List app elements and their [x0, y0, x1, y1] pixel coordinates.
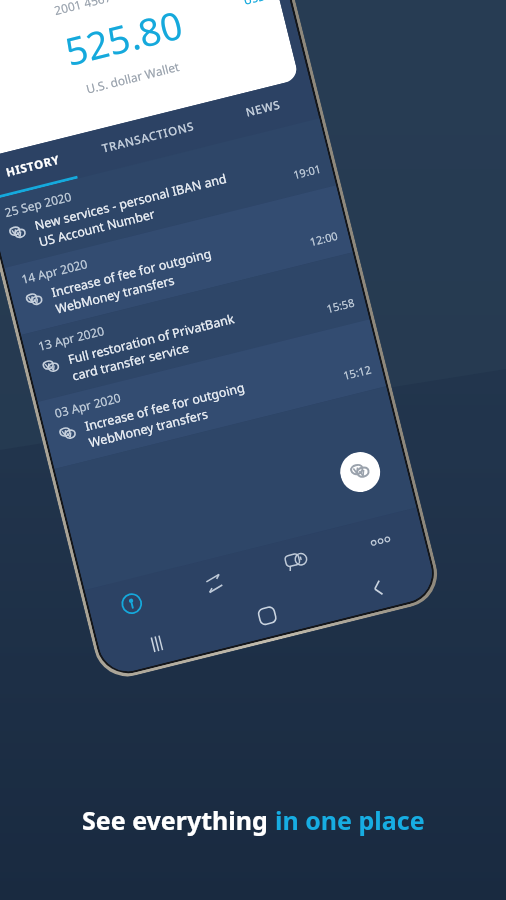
button[interactable]: Home	[207, 582, 328, 650]
button[interactable]: 13 Apr 2020	[21, 252, 369, 402]
staticText: USD	[242, 0, 268, 8]
staticText: 14 Apr 2020	[20, 255, 89, 287]
button[interactable]: Transfer	[167, 549, 261, 616]
staticText: U.S. dollar Wallet	[84, 58, 181, 97]
staticText: 13 Apr 2020	[36, 322, 106, 354]
button[interactable]: 03 Apr 2020	[38, 319, 386, 469]
button[interactable]: Recents	[96, 609, 217, 677]
staticText: Full restoration of PrivatBank card tran…	[66, 289, 326, 384]
staticText: NEWS	[244, 96, 283, 121]
staticText: See everything	[82, 803, 275, 837]
button[interactable]: More	[333, 507, 428, 575]
button[interactable]: HISTORY	[0, 134, 89, 198]
button[interactable]: Back	[317, 554, 438, 622]
staticText: Increase of fee for outgoing WebMoney tr…	[50, 222, 309, 317]
button[interactable]: 2001 4567 6790 8903	[0, 0, 299, 157]
button[interactable]: TRANSACTIONS	[79, 102, 217, 173]
button[interactable]: 14 Apr 2020	[4, 185, 353, 335]
staticText: 19:01	[291, 161, 323, 182]
staticText: Increase of fee for outgoing WebMoney tr…	[83, 356, 342, 450]
staticText: HISTORY	[4, 152, 62, 180]
staticText: 15:58	[325, 294, 357, 316]
staticText: New services - personal IBAN and US Acco…	[33, 155, 292, 250]
staticText: 12:00	[308, 227, 340, 249]
button[interactable]: NEWS	[207, 77, 319, 141]
button[interactable]: 25 Sep 2020	[0, 118, 336, 268]
button[interactable]: New payment	[336, 448, 384, 496]
staticText: 525.80	[59, 0, 187, 77]
staticText: TRANSACTIONS	[100, 118, 196, 157]
staticText: 2001 4567 6790 8903	[52, 0, 173, 18]
staticText: in one place	[275, 803, 425, 837]
staticText: 25 Sep 2020	[3, 188, 74, 220]
button[interactable]: Chat	[250, 528, 345, 596]
staticText: 03 Apr 2020	[53, 389, 123, 421]
button[interactable]: Wallets	[85, 570, 179, 637]
staticText: 15:12	[342, 361, 373, 383]
